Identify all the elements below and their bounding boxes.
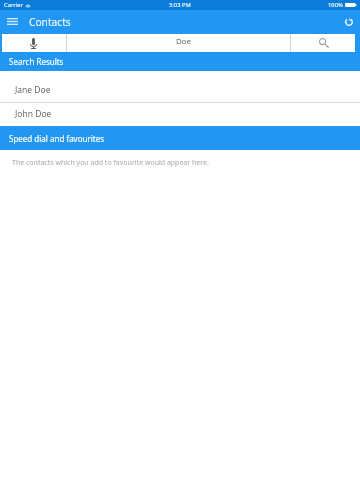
staticText: Contacts [29,15,71,29]
button[interactable]: Search [291,34,355,52]
staticText: Search Results [9,56,64,67]
staticText: John Doe [15,108,52,120]
staticText: Speed dial and favourites [9,133,105,144]
button[interactable]: John Doe [0,103,360,126]
staticText: The contacts which you add to favourite … [12,158,209,168]
staticText: Carrier [4,1,23,9]
staticText: 3:03 PM [169,1,191,9]
button[interactable]: Voice search [2,34,66,52]
button[interactable]: Jane Doe [0,80,360,102]
staticText: 100% [328,1,343,9]
staticText: Doe [176,36,191,47]
button[interactable]: Menu [0,10,24,34]
staticText: Jane Doe [15,84,51,96]
button[interactable]: Refresh [338,10,360,34]
